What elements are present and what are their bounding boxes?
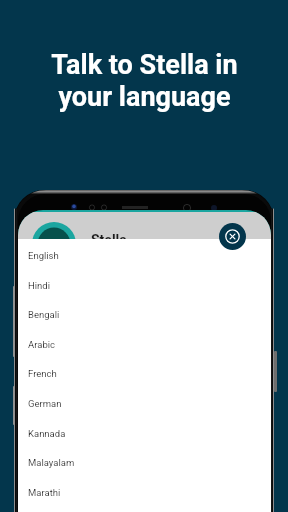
staticText: Marathi (28, 487, 61, 498)
staticText: your language (58, 81, 231, 113)
button[interactable]: German (18, 388, 271, 418)
button[interactable]: Bengali (18, 299, 271, 329)
button[interactable]: Kannada (18, 418, 271, 448)
staticText: Malayalam (28, 457, 75, 468)
button[interactable]: Marathi (18, 477, 271, 507)
staticText: Arabic (28, 339, 56, 350)
button[interactable]: Hindi (18, 270, 271, 300)
staticText: English (28, 250, 59, 261)
button[interactable]: French (18, 358, 271, 388)
staticText: Hindi (28, 280, 51, 291)
staticText: Talk to Stella in (51, 49, 238, 81)
staticText: Kannada (28, 428, 66, 439)
staticText: Stella (91, 232, 127, 248)
button[interactable]: Malayalam (18, 447, 271, 477)
staticText: German (28, 398, 62, 409)
button[interactable]: Arabic (18, 329, 271, 359)
staticText: Bengali (28, 309, 60, 320)
button[interactable]: English (18, 240, 271, 270)
button[interactable]: Close (219, 223, 246, 250)
staticText: French (28, 368, 57, 379)
